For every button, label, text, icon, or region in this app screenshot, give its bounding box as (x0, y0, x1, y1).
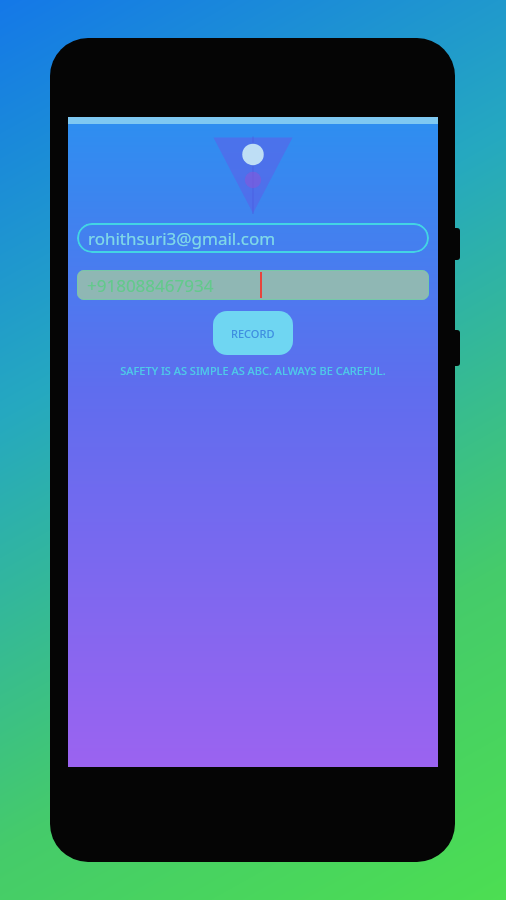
button[interactable]: rohithsuri3@gmail.com (77, 223, 429, 253)
button[interactable]: RECORD (213, 311, 293, 355)
staticText: RECORD (231, 326, 275, 341)
other: App logo (210, 134, 296, 214)
staticText: SAFETY IS AS SIMPLE AS ABC. ALWAYS BE CA… (71, 363, 435, 378)
button[interactable]: +918088467934 (77, 270, 429, 300)
staticText: +918088467934 (87, 274, 214, 297)
staticText: rohithsuri3@gmail.com (88, 227, 276, 250)
